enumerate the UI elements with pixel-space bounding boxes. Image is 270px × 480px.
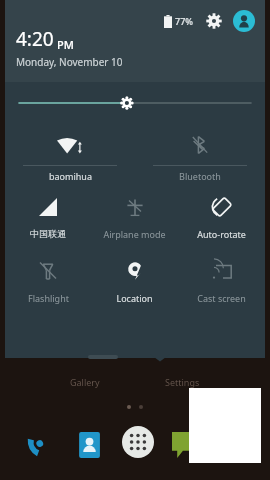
button[interactable]: Location	[91, 250, 178, 314]
staticText: Cast screen	[197, 292, 246, 304]
staticText: Bluetooth	[179, 170, 221, 182]
staticText: Flashlight	[28, 292, 69, 304]
staticText: baomihua	[49, 170, 92, 182]
button[interactable]: Flashlight	[5, 250, 91, 314]
button[interactable]: Gallery	[70, 376, 100, 388]
staticText: Monday, November 10	[16, 55, 123, 69]
button[interactable]: 中国联通	[5, 186, 91, 250]
staticText: Auto-rotate	[197, 228, 246, 240]
staticText: PM	[57, 37, 74, 52]
button[interactable]: baomihua	[5, 124, 135, 186]
staticText: 中国联通	[30, 228, 66, 239]
staticText: 77%	[175, 15, 193, 27]
button[interactable]: Brightness	[5, 82, 265, 124]
button[interactable]: User profile	[233, 10, 255, 32]
button[interactable]: Contacts	[72, 428, 106, 462]
button[interactable]: Auto-rotate	[178, 186, 265, 250]
button[interactable]: Settings	[204, 11, 224, 31]
staticText: Airplane mode	[103, 228, 166, 240]
button[interactable]: Cast screen	[178, 250, 265, 314]
button[interactable]: Bluetooth	[135, 124, 265, 186]
button[interactable]: Airplane mode	[91, 186, 178, 250]
button[interactable]: Settings	[165, 376, 200, 388]
staticText: 4:20	[16, 26, 54, 52]
staticText: Location	[116, 292, 153, 304]
button[interactable]: Messaging	[168, 428, 202, 462]
other: Battery	[164, 15, 172, 28]
button[interactable]: Phone	[20, 428, 54, 462]
button[interactable]: Apps	[121, 425, 155, 459]
